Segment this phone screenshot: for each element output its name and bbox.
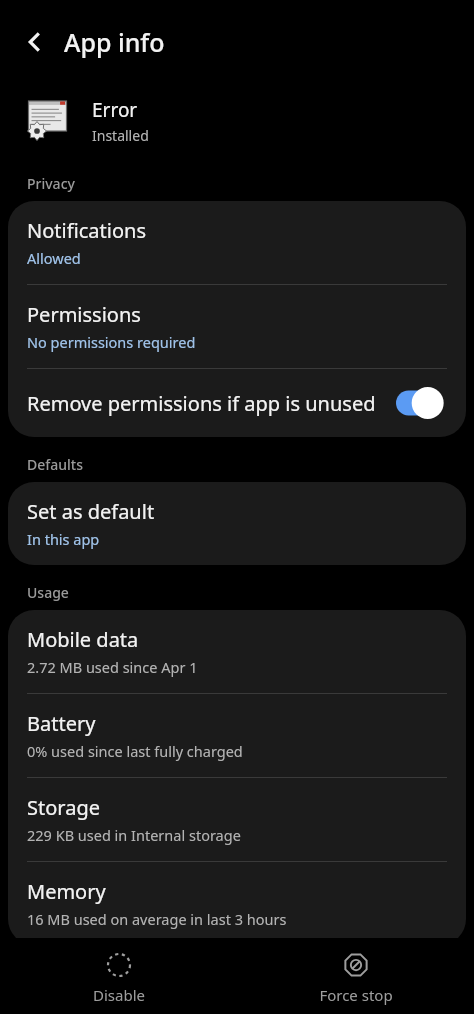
staticText: Disable bbox=[93, 985, 145, 1005]
staticText: Storage bbox=[27, 794, 100, 821]
staticText: Defaults bbox=[27, 455, 83, 474]
staticText: Privacy bbox=[27, 174, 75, 193]
button[interactable]: Error bbox=[0, 84, 474, 158]
staticText: 229 KB used in Internal storage bbox=[27, 825, 241, 845]
staticText: Force stop bbox=[319, 985, 393, 1005]
staticText: Notifications bbox=[27, 217, 146, 244]
staticText: Set as default bbox=[27, 498, 155, 525]
button[interactable]: Back bbox=[12, 19, 58, 65]
staticText: In this app bbox=[27, 529, 100, 549]
button[interactable]: Permissions bbox=[8, 285, 466, 368]
button[interactable]: Remove permissions if app is unused bbox=[8, 369, 466, 437]
staticText: Battery bbox=[27, 710, 96, 737]
staticText: No permissions required bbox=[27, 332, 196, 352]
button[interactable]: Memory bbox=[8, 862, 466, 945]
staticText: Remove permissions if app is unused bbox=[27, 390, 386, 417]
button[interactable]: Set as default bbox=[8, 482, 466, 565]
staticText: Error bbox=[92, 97, 138, 123]
staticText: 0% used since last fully charged bbox=[27, 741, 243, 761]
staticText: Memory bbox=[27, 878, 106, 905]
staticText: 2.72 MB used since Apr 1 bbox=[27, 657, 198, 677]
staticText: Allowed bbox=[27, 248, 81, 268]
button[interactable]: Storage bbox=[8, 778, 466, 861]
button[interactable]: Notifications bbox=[8, 201, 466, 284]
button[interactable]: Force stop bbox=[237, 938, 474, 1005]
button[interactable]: Remove permissions toggle bbox=[396, 387, 450, 419]
staticText: 16 MB used on average in last 3 hours bbox=[27, 909, 287, 929]
staticText: Permissions bbox=[27, 301, 141, 328]
button[interactable]: Mobile data bbox=[8, 610, 466, 693]
staticText: Installed bbox=[92, 126, 149, 145]
staticText: Mobile data bbox=[27, 626, 139, 653]
staticText: Usage bbox=[27, 583, 69, 602]
button[interactable]: Disable bbox=[0, 938, 237, 1005]
button[interactable]: Battery bbox=[8, 694, 466, 777]
staticText: App info bbox=[64, 25, 165, 59]
